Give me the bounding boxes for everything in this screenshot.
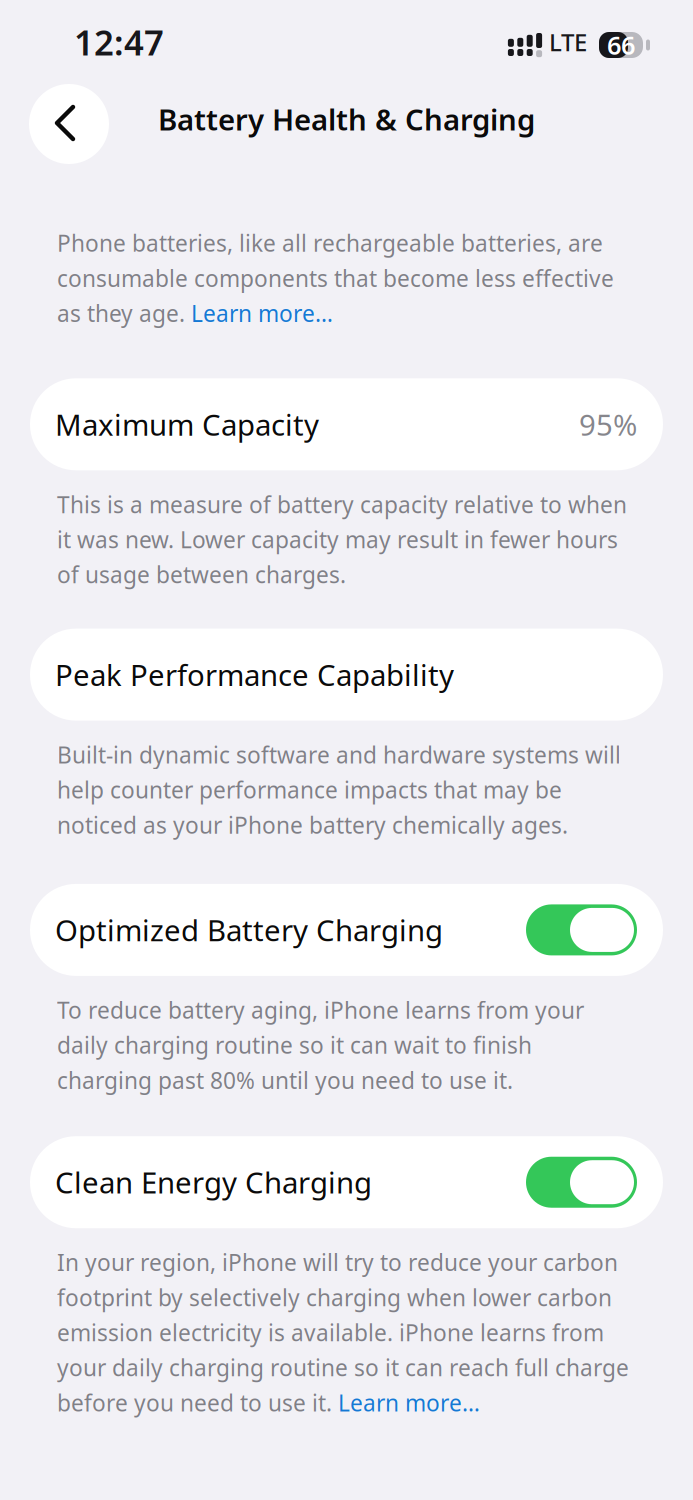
staticText: Maximum Capacity [55, 405, 319, 444]
staticText: Battery Health & Charging [158, 99, 535, 138]
staticText: Clean Energy Charging [55, 1163, 372, 1202]
staticText: Optimized Battery Charging [55, 910, 443, 949]
button[interactable]: Clean Energy Charging [30, 1136, 663, 1228]
button[interactable]: Back [29, 84, 109, 164]
staticText: To reduce battery aging, iPhone learns f… [57, 995, 584, 1095]
staticText: 12:47 [74, 19, 164, 65]
staticText: LTE [549, 26, 587, 58]
staticText: Built-in dynamic software and hardware s… [57, 740, 621, 840]
staticText: In your region, iPhone will try to reduc… [57, 1247, 629, 1418]
staticText: Phone batteries, like all rechargeable b… [57, 228, 614, 328]
staticText: Peak Performance Capability [55, 655, 454, 694]
staticText: 66 [607, 28, 635, 62]
button[interactable]: Optimized Battery Charging [30, 884, 663, 976]
staticText: 95% [579, 405, 637, 444]
button[interactable]: Peak Performance Capability [30, 629, 663, 721]
button[interactable]: Maximum Capacity [30, 378, 663, 470]
staticText: This is a measure of battery capacity re… [57, 489, 627, 590]
